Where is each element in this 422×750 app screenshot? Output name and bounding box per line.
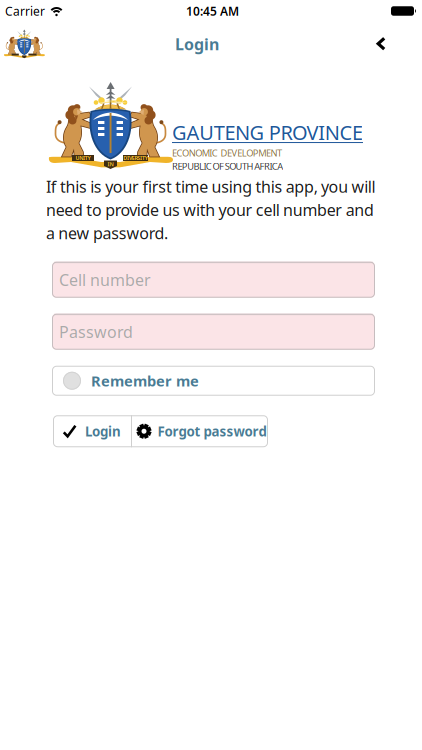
staticText: Carrier <box>5 3 45 19</box>
staticText: Cell number <box>59 269 151 290</box>
staticText: If this is your first time using this ap… <box>46 176 375 244</box>
button[interactable]: Forgot password <box>132 415 268 447</box>
button[interactable]: Remember me <box>52 366 375 396</box>
staticText: GAUTENG PROVINCE <box>172 119 363 146</box>
staticText: Login <box>175 33 219 55</box>
staticText: Password <box>59 321 133 342</box>
staticText: IN <box>107 161 113 168</box>
button[interactable]: Back <box>369 29 394 58</box>
staticText: Forgot password <box>157 422 266 440</box>
staticText: REPUBLIC OF SOUTH AFRICA <box>172 160 283 172</box>
staticText: Login <box>85 422 121 440</box>
staticText: ECONOMIC DEVELOPMENT <box>172 147 282 159</box>
staticText: UNITY <box>75 154 91 162</box>
button[interactable]: Password <box>52 314 375 350</box>
staticText: Remember me <box>91 371 199 390</box>
staticText: DIVERSITY <box>123 154 148 162</box>
staticText: 10:45 AM <box>186 3 239 19</box>
button[interactable]: Cell number <box>52 262 375 298</box>
button[interactable]: Login <box>53 415 131 447</box>
